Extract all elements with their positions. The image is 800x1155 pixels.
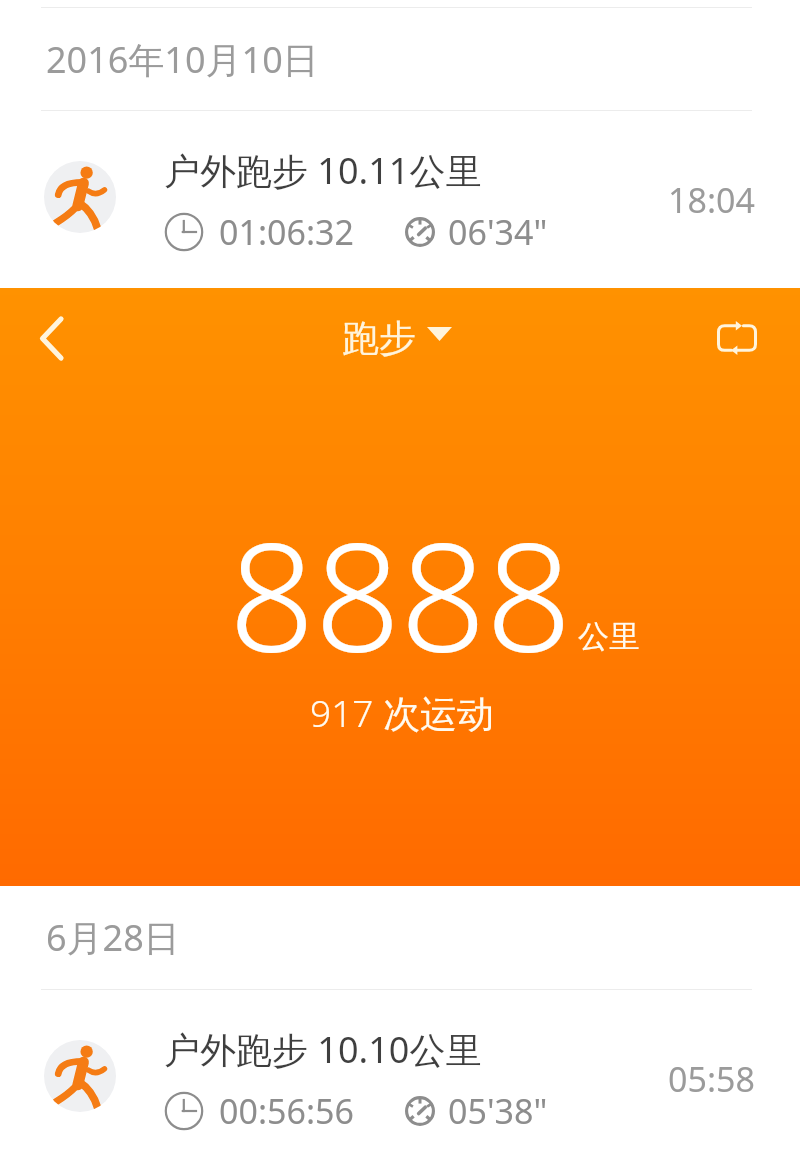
- staticText: 00:56:56: [219, 1088, 354, 1134]
- staticText: 01:06:32: [219, 209, 354, 255]
- staticText: 6月28日: [46, 913, 180, 962]
- staticText: 跑步: [342, 315, 416, 362]
- staticText: 05'38": [448, 1088, 548, 1134]
- staticText: 18:04: [668, 177, 755, 223]
- button[interactable]: Back: [0, 288, 102, 388]
- button[interactable]: 户外跑步 10.11公里: [0, 111, 800, 288]
- staticText: 05:58: [668, 1056, 755, 1102]
- button[interactable]: 跑步: [336, 307, 458, 370]
- button[interactable]: Sync: [674, 288, 800, 388]
- staticText: 06'34": [448, 209, 548, 255]
- staticText: 户外跑步 10.10公里: [164, 1025, 482, 1074]
- staticText: 公里: [578, 617, 640, 656]
- button[interactable]: 户外跑步 10.10公里: [0, 990, 800, 1155]
- staticText: 户外跑步 10.11公里: [164, 146, 482, 195]
- staticText: 2016年10月10日: [46, 35, 319, 84]
- staticText: 8888: [229, 492, 572, 696]
- staticText: 917 次运动: [310, 687, 495, 738]
